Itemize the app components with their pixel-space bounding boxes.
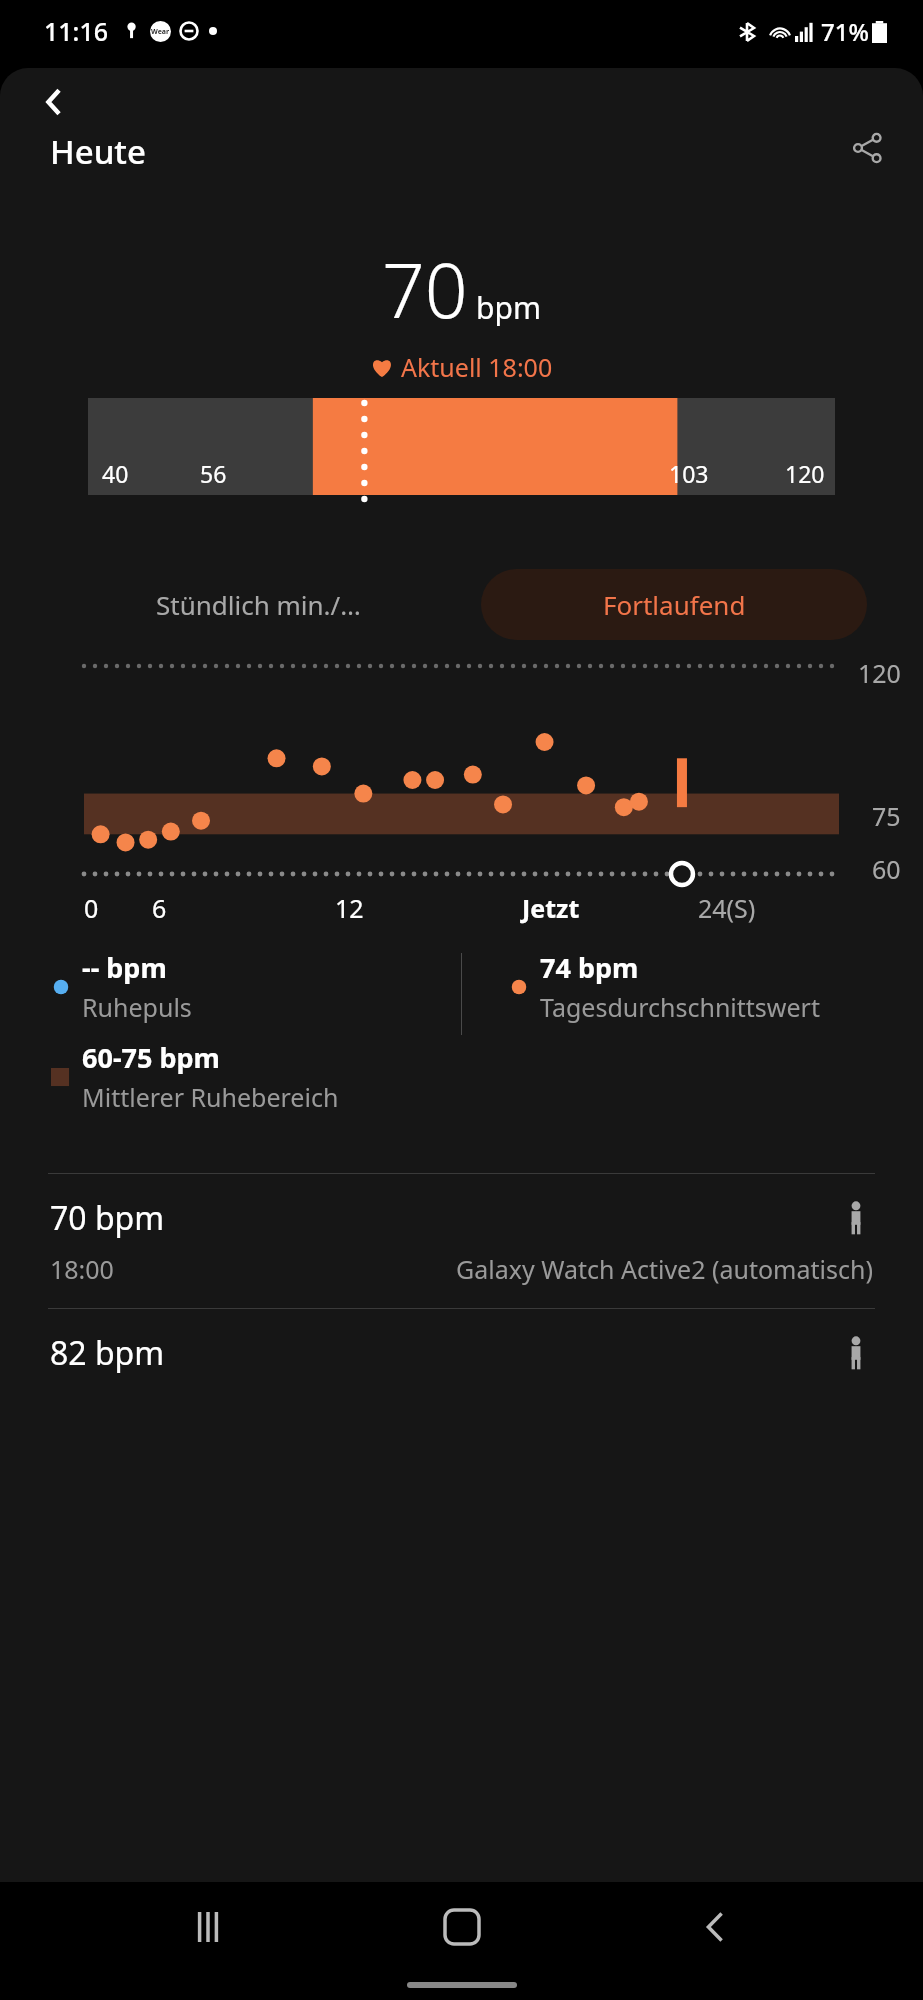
- staticText: 12: [335, 891, 522, 925]
- button[interactable]: Back: [30, 78, 78, 126]
- staticText: 70: [382, 238, 468, 340]
- staticText: 70 bpm: [50, 1196, 165, 1240]
- staticText: 6: [152, 891, 335, 925]
- staticText: 75: [872, 799, 901, 833]
- button[interactable]: 70 bpm: [0, 1174, 923, 1308]
- button[interactable]: Home: [417, 1882, 507, 1972]
- button[interactable]: Recents: [163, 1882, 253, 1972]
- button[interactable]: Share: [839, 120, 895, 176]
- staticText: 60: [872, 852, 901, 886]
- button[interactable]: -- bpm: [50, 949, 461, 1024]
- staticText: Aktuell 18:00: [401, 350, 553, 384]
- staticText: 71%: [821, 15, 869, 48]
- button[interactable]: Fortlaufend: [481, 569, 867, 640]
- staticText: Heute: [50, 129, 146, 174]
- staticText: Wear: [151, 27, 170, 37]
- button[interactable]: 82 bpm: [0, 1309, 923, 1397]
- button[interactable]: Back: [670, 1882, 760, 1972]
- staticText: 56: [200, 458, 227, 489]
- button[interactable]: Stündlich min./…: [56, 587, 461, 622]
- staticText: 74 bpm: [540, 949, 639, 986]
- button[interactable]: 74 bpm: [508, 949, 873, 1024]
- button[interactable]: 60-75 bpm: [50, 1039, 461, 1114]
- staticText: -- bpm: [82, 949, 167, 986]
- staticText: 82 bpm: [50, 1331, 165, 1375]
- staticText: Ruhepuls: [82, 990, 192, 1024]
- staticText: 11:16: [44, 14, 109, 48]
- staticText: 0: [84, 891, 152, 925]
- staticText: bpm: [476, 287, 541, 328]
- staticText: Stündlich min./…: [156, 587, 361, 622]
- staticText: Galaxy Watch Active2 (automatisch): [456, 1252, 873, 1286]
- staticText: 120: [785, 458, 825, 489]
- staticText: 18:00: [50, 1252, 114, 1286]
- staticText: 120: [858, 656, 901, 690]
- staticText: 24(S): [698, 891, 839, 925]
- staticText: Jetzt: [522, 891, 698, 925]
- staticText: Mittlerer Ruhebereich: [82, 1080, 339, 1114]
- staticText: Tagesdurchschnittswert: [540, 990, 820, 1024]
- staticText: 60-75 bpm: [82, 1039, 220, 1076]
- staticText: Fortlaufend: [603, 587, 746, 622]
- staticText: 40: [102, 458, 129, 489]
- staticText: 103: [669, 458, 709, 489]
